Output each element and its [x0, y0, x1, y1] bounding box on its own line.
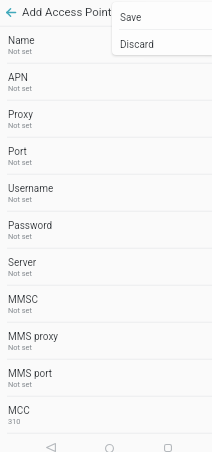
staticText: Not set	[8, 232, 32, 241]
staticText: Not set	[8, 306, 32, 315]
staticText: Not set	[8, 269, 32, 278]
staticText: Discard	[120, 39, 154, 51]
staticText: MMS port	[8, 368, 53, 380]
button[interactable]: Username	[0, 175, 212, 212]
staticText: Not set	[8, 195, 32, 204]
button[interactable]: Save	[112, 2, 212, 29]
button[interactable]: MMS port	[0, 360, 212, 397]
staticText: Username	[8, 183, 54, 195]
staticText: Not set	[8, 380, 32, 389]
staticText: 310	[8, 417, 21, 426]
staticText: Not set	[8, 47, 32, 56]
staticText: Password	[8, 220, 53, 232]
button[interactable]: Server	[0, 249, 212, 286]
button[interactable]: MCC	[0, 397, 212, 434]
button[interactable]: Discard	[112, 30, 212, 55]
staticText: MCC	[8, 405, 30, 417]
button[interactable]: Navigate up	[0, 0, 22, 26]
button[interactable]: Home	[95, 434, 124, 452]
staticText: APN	[8, 72, 28, 84]
button[interactable]: Password	[0, 212, 212, 249]
staticText: Port	[8, 146, 27, 158]
button[interactable]: Proxy	[0, 101, 212, 138]
button[interactable]: MMSC	[0, 286, 212, 323]
button[interactable]: Name	[0, 27, 212, 64]
button[interactable]: MMS proxy	[0, 323, 212, 360]
staticText: Not set	[8, 121, 32, 130]
staticText: MMS proxy	[8, 331, 59, 343]
staticText: Not set	[8, 158, 32, 167]
staticText: Not set	[8, 84, 32, 93]
staticText: MMSC	[8, 294, 38, 306]
staticText: Proxy	[8, 109, 33, 121]
button[interactable]: Port	[0, 138, 212, 175]
button[interactable]: Back	[36, 434, 65, 452]
staticText: Not set	[8, 343, 32, 352]
staticText: Name	[8, 35, 35, 47]
button[interactable]: Recent apps	[152, 434, 181, 452]
button[interactable]: APN	[0, 64, 212, 101]
staticText: Add Access Point	[22, 5, 112, 18]
staticText: Server	[8, 257, 37, 269]
staticText: Save	[120, 12, 142, 24]
